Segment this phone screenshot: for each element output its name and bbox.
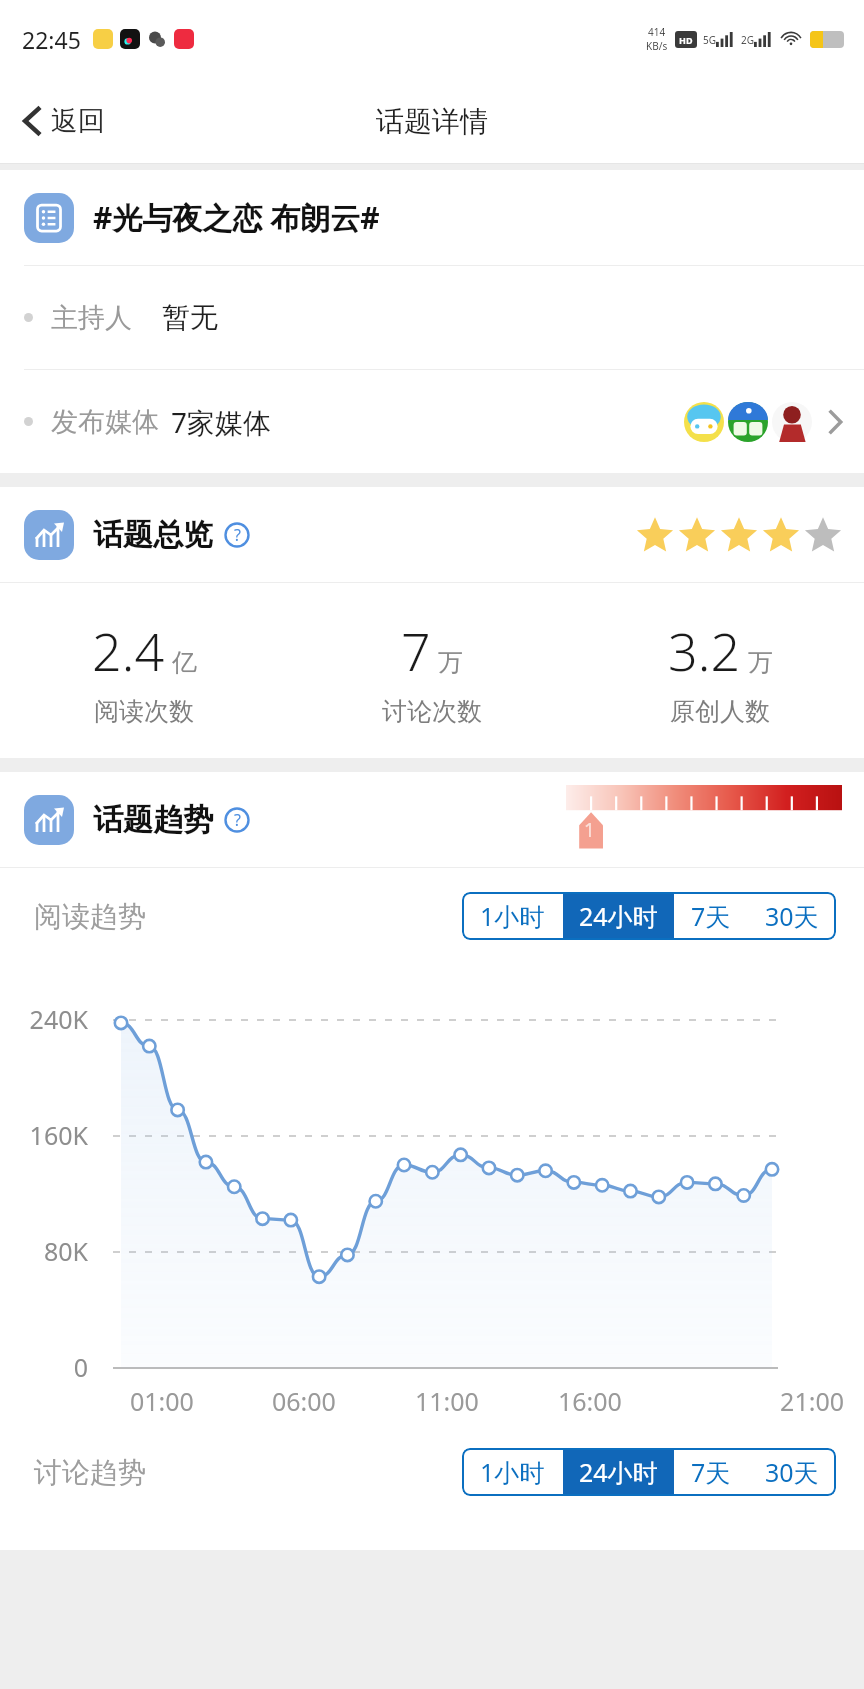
staticText: 讨论次数 (382, 696, 482, 727)
staticText: 01:00 (130, 1384, 272, 1418)
staticText: 16:00 (558, 1384, 701, 1418)
staticText: 万 (748, 647, 773, 678)
staticText: 24小时 (579, 899, 658, 933)
staticText: 话题总览 (93, 516, 213, 554)
staticText: 3.2 (668, 615, 741, 686)
staticText: #光与夜之恋 布朗云# (93, 197, 380, 238)
button[interactable]: #光与夜之恋 布朗云# (0, 170, 864, 265)
staticText: HD (679, 34, 693, 46)
button[interactable]: 24小时 (563, 892, 674, 940)
button[interactable]: 帮助 (224, 522, 250, 548)
staticText: 2.4 (92, 615, 165, 686)
button[interactable]: 返回 (0, 96, 123, 146)
staticText: 讨论趋势 (34, 1455, 146, 1490)
button[interactable]: 发布媒体 (0, 370, 864, 473)
staticText: 22:45 (22, 24, 81, 55)
staticText: 万 (438, 647, 463, 678)
button[interactable]: 1小时 (462, 892, 563, 940)
staticText: 亿 (172, 647, 197, 678)
staticText: 30天 (765, 1455, 819, 1489)
staticText: 11:00 (415, 1384, 558, 1418)
staticText: 160K (0, 1118, 88, 1152)
staticText: 返回 (51, 104, 105, 138)
staticText: 414 (648, 25, 666, 39)
staticText: ? (234, 524, 241, 546)
button[interactable]: 1小时 (462, 1448, 563, 1496)
button[interactable]: 帮助 (224, 807, 250, 833)
staticText: 06:00 (272, 1384, 415, 1418)
staticText: ? (234, 809, 241, 831)
staticText: 30天 (765, 899, 819, 933)
staticText: 7家媒体 (171, 403, 272, 441)
staticText: 240K (0, 1002, 88, 1036)
staticText: KB/s (646, 39, 668, 53)
staticText: 0 (0, 1350, 88, 1384)
staticText: 阅读趋势 (34, 899, 146, 934)
staticText: 80K (0, 1234, 88, 1268)
staticText: 1小时 (480, 899, 545, 933)
button[interactable]: 30天 (748, 1448, 836, 1496)
button[interactable]: 主持人 (0, 266, 864, 369)
staticText: 1 (584, 817, 595, 843)
staticText: 5G (703, 33, 716, 47)
staticText: 7天 (691, 1455, 731, 1489)
button[interactable]: 7天 (674, 892, 748, 940)
staticText: 暂无 (162, 300, 218, 335)
button[interactable]: 7天 (674, 1448, 748, 1496)
staticText: 原创人数 (670, 696, 770, 727)
staticText: 阅读次数 (94, 696, 194, 727)
staticText: 主持人 (51, 301, 132, 335)
staticText: 24小时 (579, 1455, 658, 1489)
staticText: 1小时 (480, 1455, 545, 1489)
staticText: 发布媒体 (51, 405, 159, 439)
staticText: 21:00 (701, 1384, 844, 1418)
staticText: 话题详情 (376, 104, 488, 139)
button[interactable]: 30天 (748, 892, 836, 940)
staticText: 话题趋势 (93, 801, 213, 839)
button[interactable]: 24小时 (563, 1448, 674, 1496)
staticText: 7天 (691, 899, 731, 933)
staticText: 7 (401, 615, 431, 686)
staticText: 2G (741, 33, 754, 47)
